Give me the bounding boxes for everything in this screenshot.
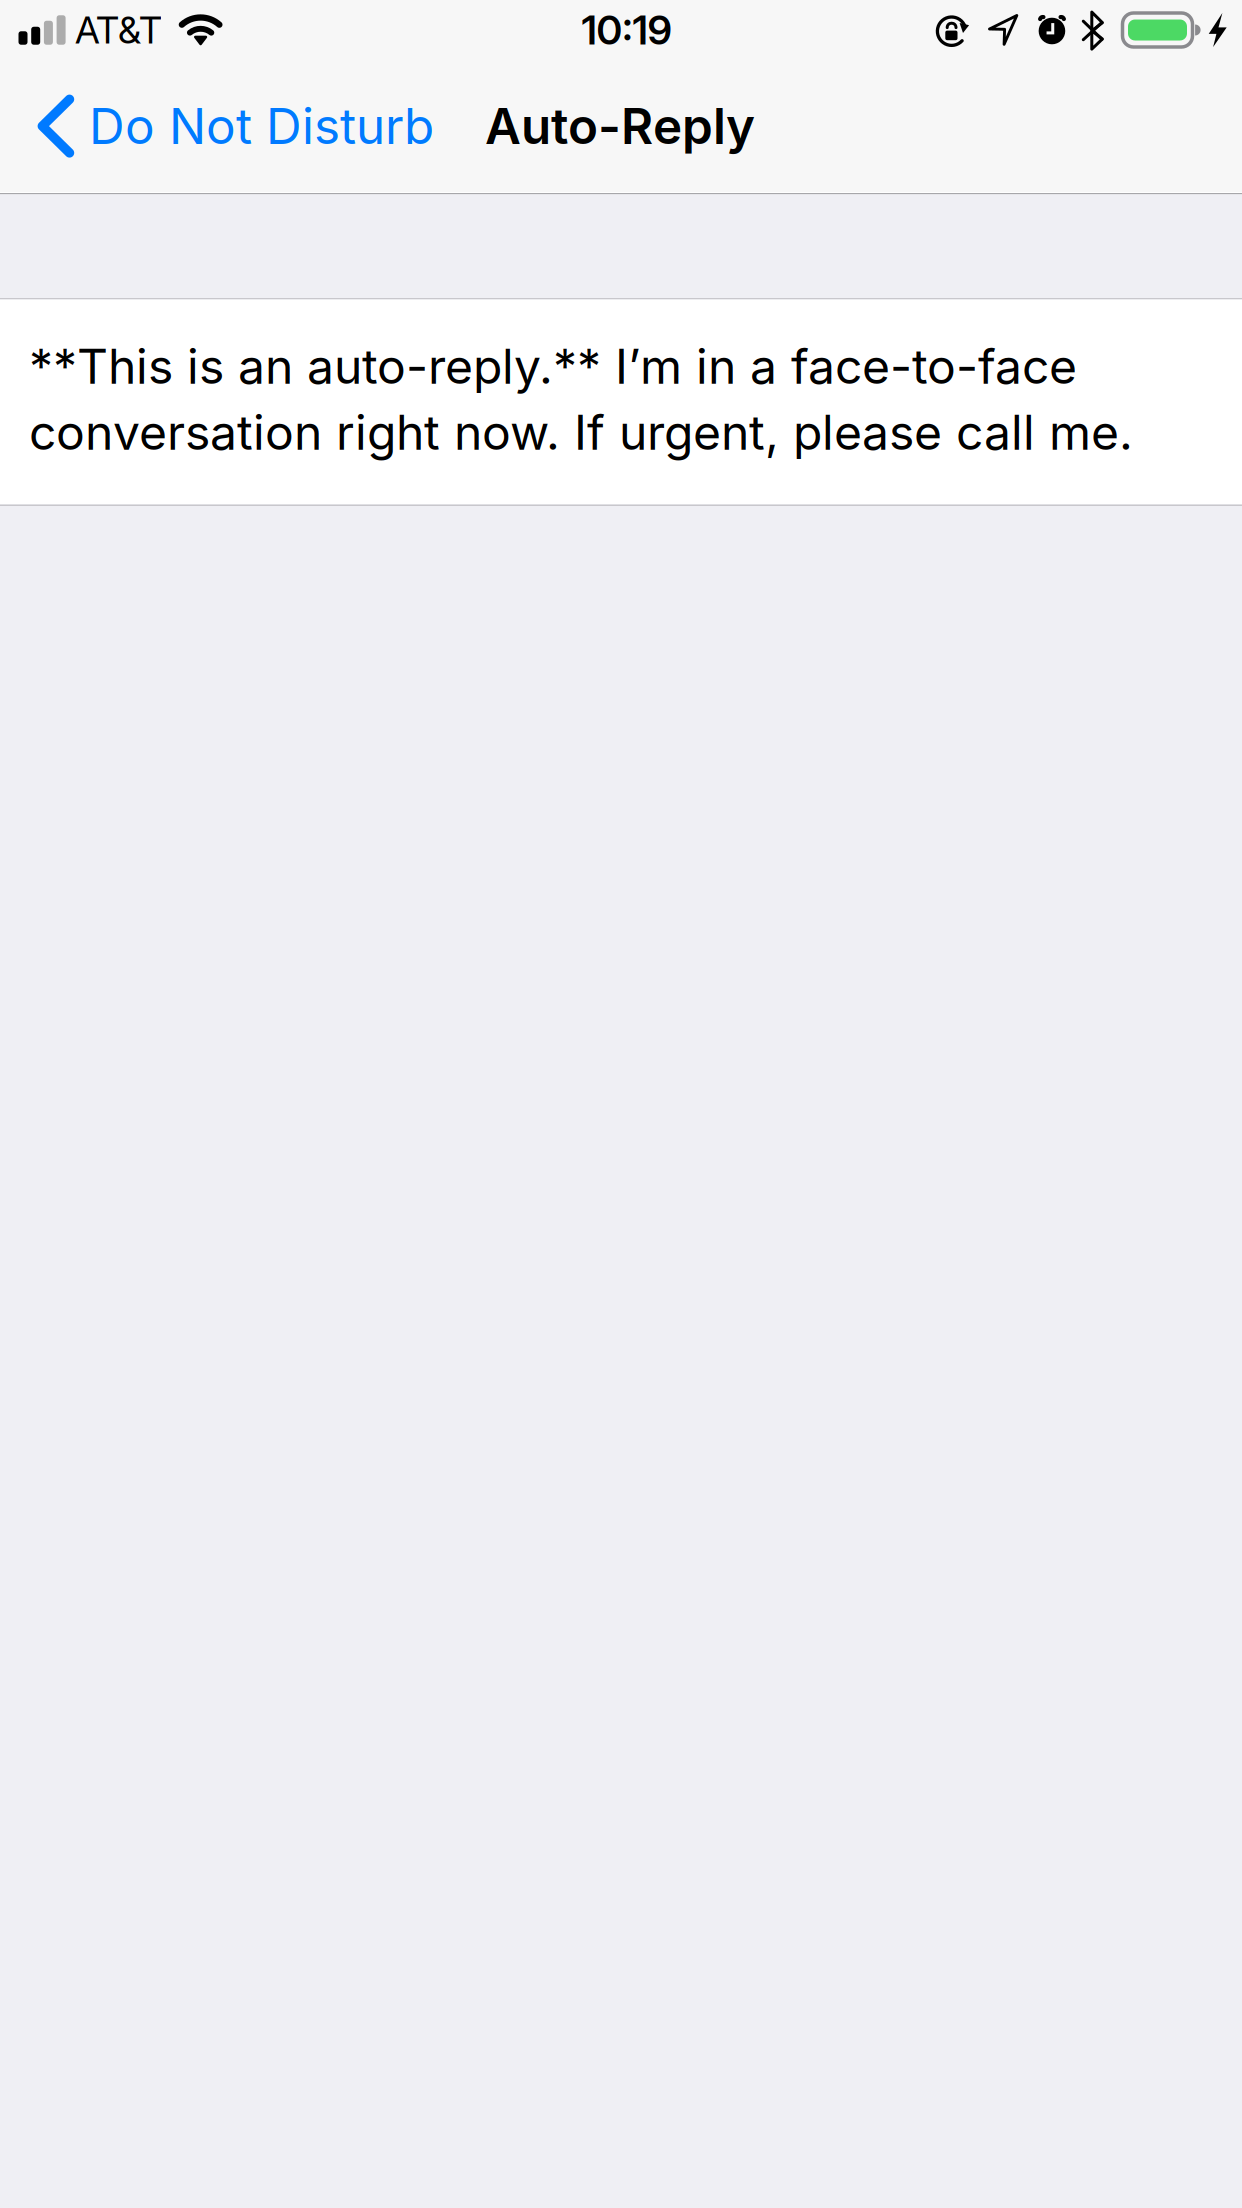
staticText: Auto-Reply <box>485 96 755 156</box>
staticText: AT&T <box>75 7 162 53</box>
button[interactable]: **This is an auto-reply.** I’m in a face… <box>0 299 1242 504</box>
staticText: Do Not Disturb <box>89 96 434 156</box>
staticText: **This is an auto-reply.** I’m in a face… <box>29 333 1133 465</box>
button[interactable]: Do Not Disturb <box>0 60 450 192</box>
staticText: 10:19 <box>581 6 671 54</box>
